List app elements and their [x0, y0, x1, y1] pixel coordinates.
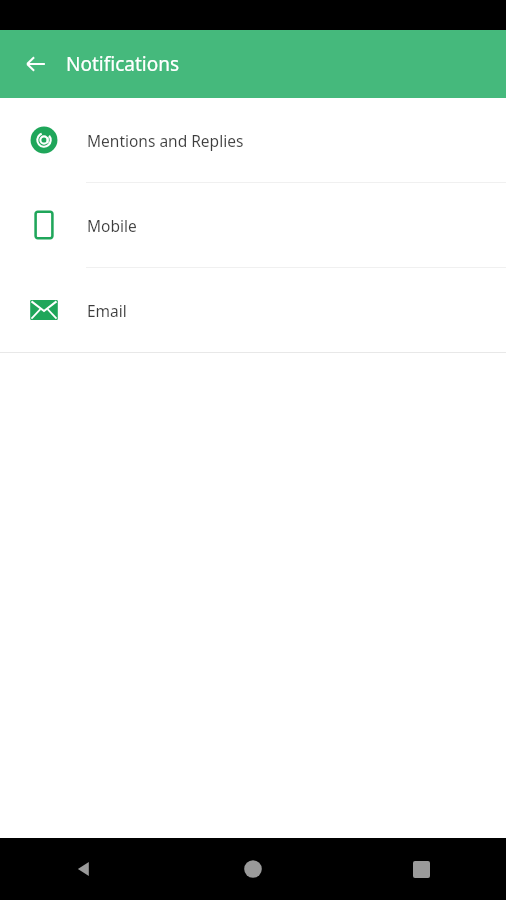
staticText: Mobile — [87, 215, 137, 236]
staticText: Mentions and Replies — [87, 130, 244, 151]
staticText: Notifications — [66, 51, 180, 77]
button[interactable]: Recent apps — [337, 838, 506, 900]
button[interactable]: Mobile — [0, 183, 506, 267]
staticText: Email — [87, 300, 127, 321]
button[interactable]: Mentions and Replies — [0, 98, 506, 182]
button[interactable]: Back — [0, 838, 168, 900]
button[interactable]: Email — [0, 268, 506, 352]
button[interactable]: Home — [168, 838, 337, 900]
button[interactable]: Back — [14, 42, 58, 86]
